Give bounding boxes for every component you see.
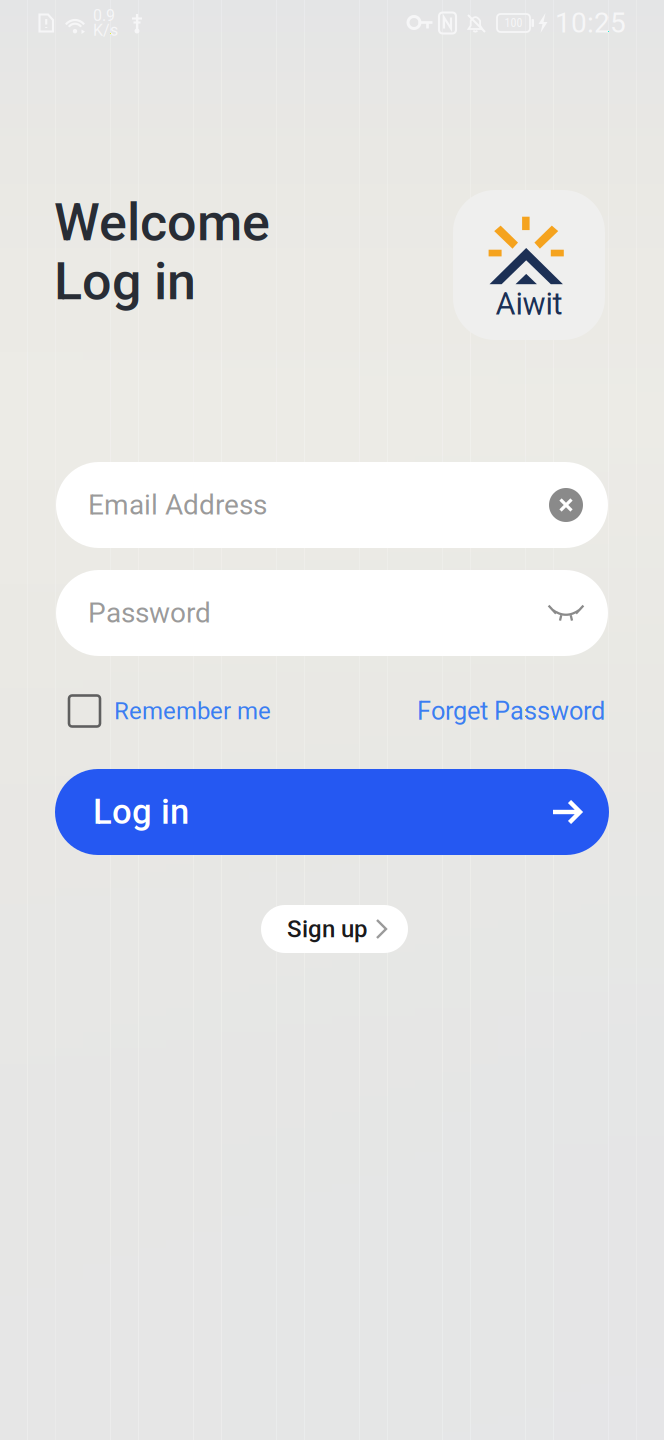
staticText: Log in xyxy=(93,792,189,832)
button[interactable]: Password xyxy=(56,570,608,656)
button[interactable]: Email Address xyxy=(56,462,608,548)
staticText: Aiwit xyxy=(495,286,562,322)
staticText: Remember me xyxy=(114,697,271,725)
staticText: Sign up xyxy=(287,915,367,943)
staticText: Forget Password xyxy=(417,696,605,726)
button[interactable]: Sign up xyxy=(261,905,408,953)
staticText: Welcome xyxy=(54,192,270,253)
staticText: Email Address xyxy=(88,489,267,521)
staticText: Password xyxy=(88,597,211,629)
staticText: K/s xyxy=(93,21,118,40)
staticText: Log in xyxy=(54,251,196,312)
staticText: 0.9 xyxy=(93,6,115,25)
button[interactable]: Forget Password xyxy=(417,694,605,728)
staticText: 10:25 xyxy=(555,7,626,39)
staticText: 100 xyxy=(504,16,522,30)
button[interactable]: Remember me xyxy=(69,694,271,728)
button[interactable]: Log in xyxy=(55,769,609,855)
